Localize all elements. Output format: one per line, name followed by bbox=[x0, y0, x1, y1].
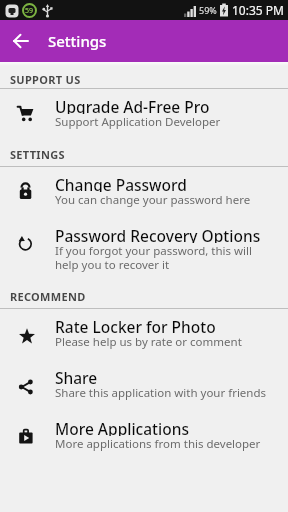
staticText: More applications from this developer bbox=[55, 436, 261, 452]
staticText: You can change your password here bbox=[55, 192, 251, 208]
staticText: Upgrade Ad-Free Pro bbox=[55, 96, 210, 114]
button[interactable]: Upgrade Ad-Free Pro bbox=[0, 89, 288, 140]
button[interactable] bbox=[0, 20, 42, 62]
staticText: Password Recovery Options bbox=[55, 225, 261, 243]
staticText: Rate Locker for Photo bbox=[55, 316, 216, 334]
staticText: SUPPORT US bbox=[10, 72, 81, 87]
staticText: Please help us by rate or comment bbox=[55, 334, 242, 350]
staticText: More Applications bbox=[55, 418, 189, 436]
staticText: Change Password bbox=[55, 174, 187, 192]
button[interactable]: Rate Locker for Photo bbox=[0, 309, 288, 360]
button[interactable]: More Applications bbox=[0, 411, 288, 462]
staticText: 10:35 PM bbox=[232, 2, 284, 18]
button[interactable]: Share bbox=[0, 360, 288, 411]
staticText: RECOMMEND bbox=[10, 289, 86, 304]
staticText: Support Application Developer bbox=[55, 114, 221, 130]
staticText: Share bbox=[55, 367, 98, 385]
staticText: Share this application with your friends bbox=[55, 385, 267, 401]
staticText: If you forgot your password, this will h… bbox=[55, 243, 253, 272]
staticText: 59 bbox=[25, 6, 34, 16]
button[interactable]: Change Password bbox=[0, 167, 288, 218]
staticText: SETTINGS bbox=[10, 147, 65, 162]
staticText: 59% bbox=[199, 4, 217, 16]
button[interactable]: Password Recovery Options bbox=[0, 218, 288, 282]
staticText: Settings bbox=[48, 31, 107, 51]
